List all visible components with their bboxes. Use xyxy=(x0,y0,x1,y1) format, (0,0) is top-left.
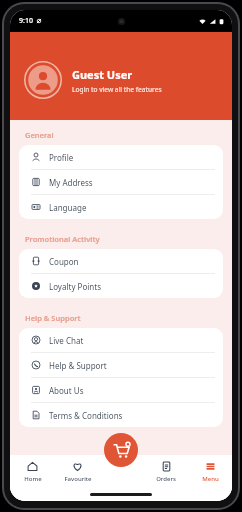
button[interactable]: Coupon xyxy=(19,249,223,273)
staticText: Language xyxy=(49,202,87,213)
staticText: Live Chat xyxy=(49,335,84,346)
button[interactable]: My Address xyxy=(19,170,223,194)
staticText: Favourite xyxy=(64,475,92,483)
staticText: General xyxy=(25,130,54,140)
staticText: Help & Support xyxy=(25,313,81,323)
staticText: 9:10 xyxy=(19,16,33,26)
button[interactable]: Menu xyxy=(188,455,232,488)
button[interactable]: Loyalty Points xyxy=(19,274,223,298)
staticText: Help & Support xyxy=(49,360,107,371)
staticText: Login to view all the features xyxy=(72,85,162,94)
staticText: Profile xyxy=(49,152,74,163)
staticText: Loyalty Points xyxy=(49,281,101,292)
staticText: Coupon xyxy=(49,256,79,267)
staticText: Menu xyxy=(202,475,219,483)
staticText: Promotional Activity xyxy=(25,234,100,244)
button[interactable]: Help & Support xyxy=(19,353,223,377)
staticText: Terms & Conditions xyxy=(49,410,123,421)
button[interactable]: Home xyxy=(10,455,55,488)
button[interactable]: Orders xyxy=(144,455,188,488)
button[interactable]: About Us xyxy=(19,378,223,402)
staticText: About Us xyxy=(49,385,84,396)
button[interactable]: Profile xyxy=(19,145,223,169)
button[interactable]: Cart xyxy=(104,433,138,467)
button[interactable]: Language xyxy=(19,195,223,219)
button[interactable]: Terms & Conditions xyxy=(19,403,223,427)
button[interactable]: Live Chat xyxy=(19,328,223,352)
staticText: Orders xyxy=(156,475,176,483)
staticText: My Address xyxy=(49,177,93,188)
staticText: Guest User xyxy=(72,67,133,82)
staticText: Home xyxy=(24,475,42,483)
button[interactable]: Favourite xyxy=(55,455,100,488)
